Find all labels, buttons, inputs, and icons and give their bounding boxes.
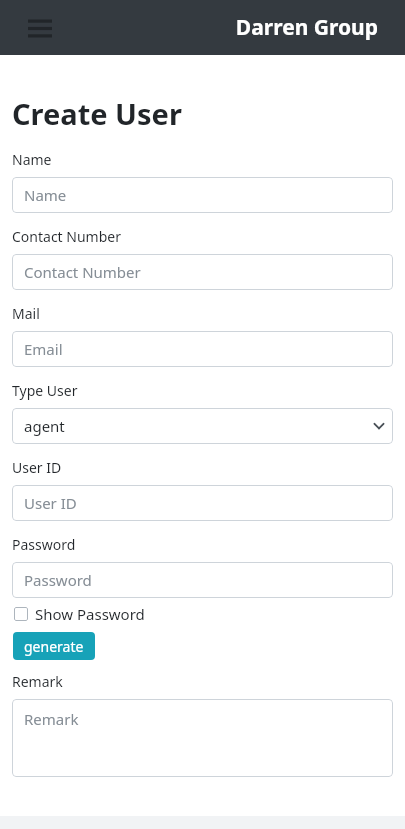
staticText: Darren Group bbox=[235, 13, 378, 42]
button[interactable]: Open navigation menu bbox=[20, 8, 60, 48]
button[interactable]: Password bbox=[12, 562, 393, 598]
staticText: Name bbox=[24, 185, 67, 205]
staticText: Remark bbox=[12, 672, 63, 691]
staticText: Email bbox=[24, 339, 63, 359]
staticText: Mail bbox=[12, 304, 40, 323]
button[interactable]: Email bbox=[12, 331, 393, 367]
staticText: agent bbox=[24, 416, 65, 436]
staticText: User ID bbox=[24, 493, 77, 513]
staticText: Type User bbox=[12, 381, 78, 400]
staticText: Password bbox=[24, 570, 92, 590]
button[interactable]: Show Password bbox=[12, 603, 145, 625]
staticText: Contact Number bbox=[12, 227, 121, 246]
button[interactable]: Contact Number bbox=[12, 254, 393, 290]
staticText: Name bbox=[12, 150, 52, 169]
staticText: Show Password bbox=[35, 604, 145, 624]
button[interactable]: Name bbox=[12, 177, 393, 213]
staticText: User ID bbox=[12, 458, 62, 477]
button[interactable]: agent bbox=[12, 408, 393, 444]
staticText: Remark bbox=[24, 709, 79, 729]
staticText: Contact Number bbox=[24, 262, 141, 282]
staticText: Password bbox=[12, 535, 76, 554]
button[interactable]: generate bbox=[13, 632, 95, 660]
staticText: Create User bbox=[12, 94, 182, 133]
staticText: generate bbox=[24, 637, 84, 656]
button[interactable]: Remark bbox=[12, 699, 393, 777]
button[interactable]: User ID bbox=[12, 485, 393, 521]
